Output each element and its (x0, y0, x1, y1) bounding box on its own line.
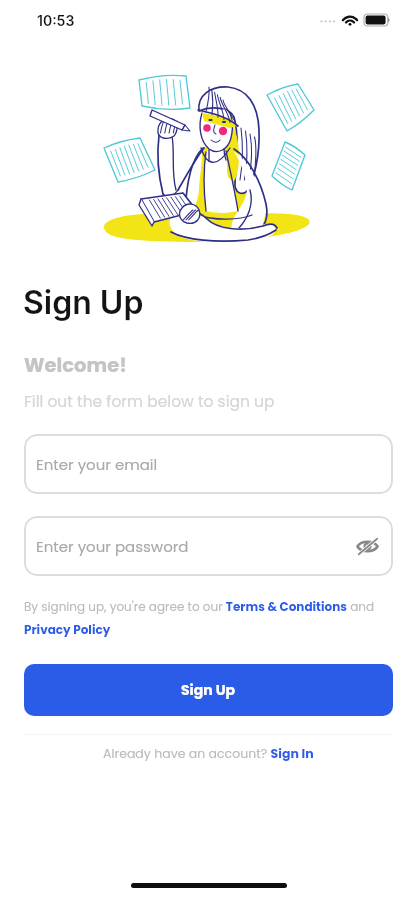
staticText: Sign Up (181, 680, 236, 700)
button[interactable]: Show password (352, 531, 382, 561)
staticText: Enter your email (36, 454, 158, 475)
button[interactable]: Enter your password (24, 516, 393, 576)
button[interactable]: Enter your email (24, 434, 393, 494)
button[interactable]: By signing up, you're agree to our Terms… (24, 598, 393, 638)
button[interactable]: Sign Up (24, 664, 393, 716)
staticText: Sign Up (23, 283, 144, 322)
staticText: 10:53 (37, 12, 75, 29)
staticText: Fill out the form below to sign up (24, 391, 275, 413)
staticText: Welcome! (24, 352, 127, 379)
staticText: Enter your password (36, 536, 189, 557)
button[interactable]: Already have an account? Sign In (103, 745, 314, 762)
